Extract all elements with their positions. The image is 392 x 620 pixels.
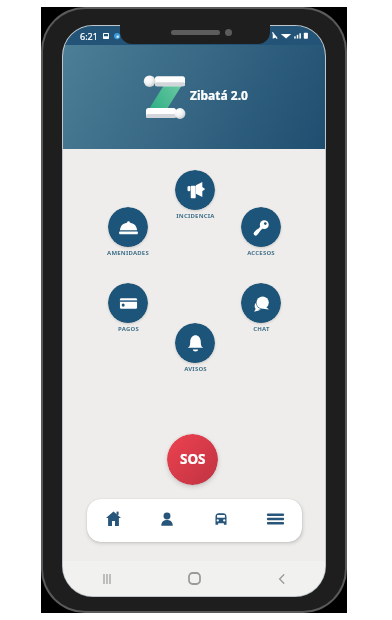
button[interactable]: PAGOS [93, 283, 163, 333]
button[interactable]: AMENIDADES [93, 207, 163, 257]
staticText: 6:21 [80, 30, 98, 42]
staticText: PAGOS [118, 325, 139, 333]
staticText: AVISOS [184, 365, 207, 373]
button[interactable]: CHAT [226, 283, 296, 333]
staticText: CHAT [253, 325, 270, 333]
staticText: SOS [180, 450, 206, 468]
staticText: INCIDENCIA [176, 212, 215, 220]
button[interactable]: Menu [248, 499, 302, 542]
staticText: ACCESOS [247, 249, 275, 257]
button[interactable]: Profile [140, 499, 194, 542]
button[interactable]: ACCESOS [226, 207, 296, 257]
button[interactable]: INCIDENCIA [160, 170, 230, 220]
button[interactable]: AVISOS [160, 323, 230, 373]
staticText: Zibatá 2.0 [190, 87, 248, 103]
button[interactable]: SOS [167, 434, 218, 485]
button[interactable]: Home [87, 499, 140, 542]
button[interactable]: Vehicles [194, 499, 248, 542]
staticText: AMENIDADES [107, 249, 149, 257]
